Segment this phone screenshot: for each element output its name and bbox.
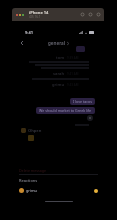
- staticText: grimu: [52, 82, 65, 87]
- button[interactable]: Delete message: [19, 166, 98, 174]
- staticText: 9:39 AM: [67, 56, 79, 60]
- staticText: iOS 16.1: [29, 15, 41, 19]
- staticText: 9:41: [25, 30, 33, 35]
- staticText: Ohpen: [28, 128, 42, 133]
- button[interactable]: general: [48, 40, 69, 46]
- staticText: 9:43 AM: [67, 83, 79, 87]
- staticText: Reactions: [19, 178, 38, 183]
- staticText: grimu: [26, 188, 37, 193]
- staticText: iPhone 14: [29, 10, 49, 15]
- staticText: We should market to Greek life: [39, 108, 92, 113]
- button[interactable]: Screenshot: [88, 12, 93, 17]
- button[interactable]: Back: [18, 39, 25, 46]
- button[interactable]: I love tacos: [70, 98, 95, 105]
- staticText: tom: [56, 55, 65, 60]
- staticText: I love tacos: [73, 99, 92, 104]
- staticText: 9:41 AM: [67, 72, 79, 76]
- button[interactable]: Record: [80, 12, 85, 17]
- button[interactable]: More options: [96, 12, 101, 17]
- button[interactable]: Add reaction: [87, 115, 93, 121]
- button[interactable]: We should market to Greek life: [36, 107, 95, 114]
- button[interactable]: grimu: [19, 186, 98, 195]
- staticText: Delete message: [19, 168, 46, 173]
- staticText: general: [48, 40, 66, 46]
- staticText: sarah: [53, 71, 65, 76]
